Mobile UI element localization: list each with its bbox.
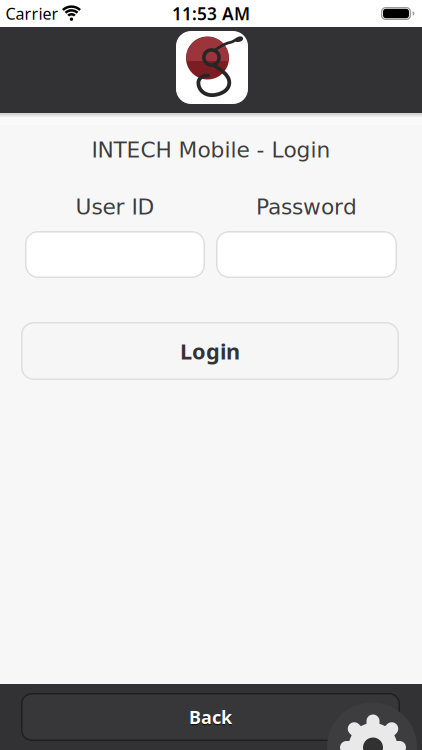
button[interactable]: Password xyxy=(216,231,397,278)
staticText: Back xyxy=(189,705,232,729)
button[interactable]: Login xyxy=(21,322,399,380)
button[interactable]: User ID xyxy=(25,231,205,278)
staticText: User ID xyxy=(75,194,154,220)
staticText: Back xyxy=(189,706,232,730)
button[interactable]: Settings xyxy=(0,0,422,750)
staticText: INTECH Mobile - Login xyxy=(91,137,330,163)
staticText: Login xyxy=(180,336,240,366)
staticText: Password xyxy=(256,194,357,220)
staticText: 11:53 AM xyxy=(172,2,250,25)
button[interactable]: Back xyxy=(21,693,400,741)
staticText: Carrier xyxy=(5,3,58,24)
